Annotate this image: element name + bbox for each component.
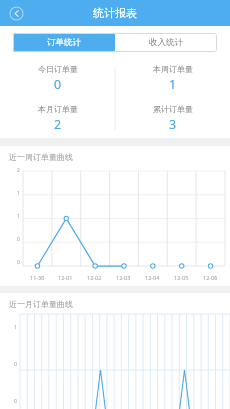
staticText: 2 xyxy=(54,116,62,133)
staticText: 今日订单量 xyxy=(38,64,78,74)
button[interactable]: 订单统计 xyxy=(13,33,115,52)
staticText: 12-04 xyxy=(145,274,160,281)
staticText: 11-30 xyxy=(30,274,45,281)
staticText: 累计订单量 xyxy=(153,104,193,114)
staticText: 12-03 xyxy=(116,274,131,281)
button[interactable]: 本月订单量 xyxy=(0,98,115,138)
staticText: 12-06 xyxy=(203,274,218,281)
staticText: 近一月订单量曲线 xyxy=(9,299,73,309)
button[interactable]: 本周订单量 xyxy=(115,59,230,98)
button[interactable]: Back xyxy=(5,2,27,24)
staticText: 0 xyxy=(54,76,62,93)
staticText: 0 xyxy=(14,361,17,368)
button[interactable]: 今日订单量 xyxy=(0,59,115,98)
button[interactable]: 收入统计 xyxy=(115,33,217,52)
staticText: 本月订单量 xyxy=(38,104,78,114)
staticText: 1 xyxy=(17,190,20,197)
staticText: 统计报表 xyxy=(93,6,137,20)
staticText: 12-01 xyxy=(58,274,73,281)
button[interactable]: 累计订单量 xyxy=(115,98,230,138)
staticText: 0 xyxy=(14,398,17,405)
staticText: 1 xyxy=(17,213,20,220)
staticText: 3 xyxy=(169,116,177,133)
staticText: 收入统计 xyxy=(149,37,183,48)
staticText: 0 xyxy=(17,259,20,266)
staticText: 12-05 xyxy=(174,274,189,281)
staticText: 1 xyxy=(14,324,17,331)
staticText: 近一周订单量曲线 xyxy=(9,152,73,162)
staticText: 0 xyxy=(17,236,20,243)
staticText: 12-02 xyxy=(87,274,102,281)
staticText: 订单统计 xyxy=(47,37,81,48)
staticText: 本周订单量 xyxy=(153,64,193,74)
staticText: 2 xyxy=(17,167,20,174)
staticText: 1 xyxy=(169,76,177,93)
